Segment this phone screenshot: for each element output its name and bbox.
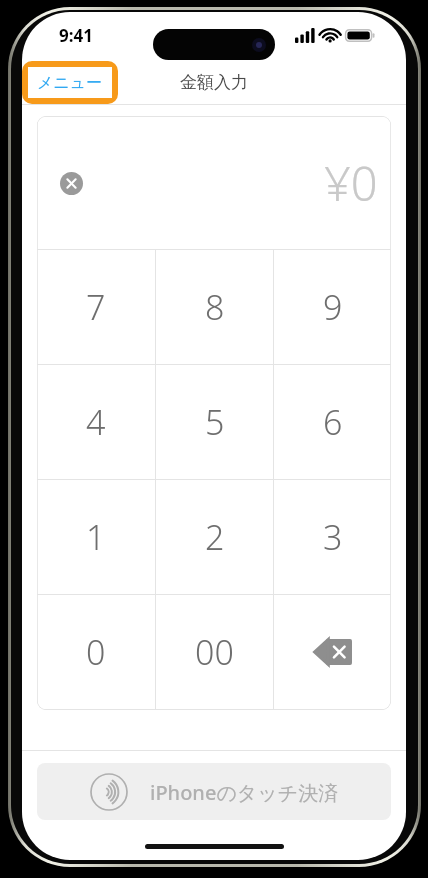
- staticText: メニュー: [37, 73, 103, 93]
- staticText: 金額入力: [180, 72, 248, 93]
- button[interactable]: 9: [274, 250, 391, 364]
- staticText: 5: [205, 399, 225, 445]
- button[interactable]: 8: [156, 250, 273, 364]
- staticText: ¥0: [324, 151, 378, 215]
- staticText: 6: [323, 399, 343, 445]
- button[interactable]: 6: [274, 365, 391, 479]
- button[interactable]: 7: [37, 250, 155, 364]
- staticText: 00: [195, 629, 234, 675]
- staticText: 9: [323, 284, 343, 330]
- button[interactable]: 0: [37, 595, 155, 709]
- staticText: 7: [86, 284, 106, 330]
- button[interactable]: 削除: [274, 595, 391, 709]
- staticText: 3: [323, 514, 343, 560]
- button[interactable]: クリア: [54, 166, 88, 200]
- staticText: 4: [86, 399, 106, 445]
- button[interactable]: 1: [37, 480, 155, 594]
- button[interactable]: 5: [156, 365, 273, 479]
- button[interactable]: 4: [37, 365, 155, 479]
- button[interactable]: メニュー: [28, 67, 112, 98]
- staticText: 0: [86, 629, 106, 675]
- staticText: 8: [205, 284, 225, 330]
- staticText: 1: [86, 514, 106, 560]
- staticText: 2: [205, 514, 225, 560]
- button[interactable]: 2: [156, 480, 273, 594]
- button[interactable]: 3: [274, 480, 391, 594]
- button[interactable]: iPhoneのタッチ決済: [37, 763, 391, 820]
- button[interactable]: 00: [156, 595, 273, 709]
- staticText: 9:41: [59, 24, 93, 47]
- staticText: iPhoneのタッチ決済: [150, 779, 339, 806]
